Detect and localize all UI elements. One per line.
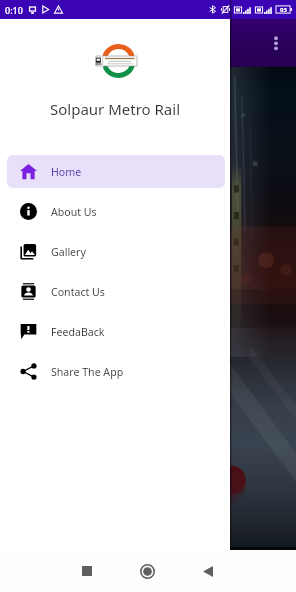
staticText: Solpaur Metro Rail xyxy=(0,99,230,119)
staticText: Share The App xyxy=(51,365,124,379)
button[interactable]: Share The App xyxy=(7,355,225,388)
staticText: FeedaBack xyxy=(51,325,105,339)
button[interactable]: About Us xyxy=(7,195,225,228)
button[interactable]: More options xyxy=(259,26,293,60)
staticText: Contact Us xyxy=(51,285,105,299)
staticText: Gallery xyxy=(51,245,86,259)
button[interactable]: Home xyxy=(128,552,166,590)
button[interactable]: Back xyxy=(189,552,227,590)
staticText: 93 xyxy=(280,6,287,14)
button[interactable]: Home xyxy=(7,155,225,188)
button[interactable]: Recent apps xyxy=(68,552,106,590)
staticText: Home xyxy=(51,165,82,179)
staticText: 0:10 xyxy=(5,4,23,16)
staticText: About Us xyxy=(51,205,97,219)
button[interactable]: Gallery xyxy=(7,235,225,268)
button[interactable]: FeedaBack xyxy=(7,315,225,348)
button[interactable]: Contact Us xyxy=(7,275,225,308)
